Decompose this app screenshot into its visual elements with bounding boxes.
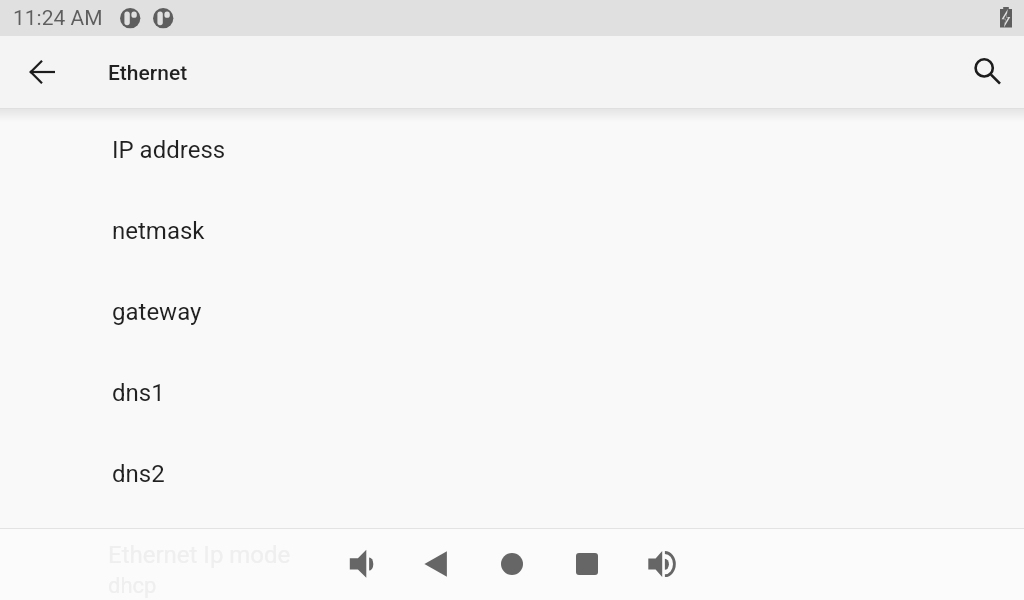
staticText: Ethernet Ip mode <box>108 541 291 569</box>
staticText: dns1 <box>112 379 165 407</box>
button[interactable]: Volume up <box>638 540 686 588</box>
button[interactable]: Ethernet Ip mode <box>0 514 1024 595</box>
staticText: gateway <box>112 298 202 326</box>
button[interactable]: gateway <box>0 271 1024 352</box>
staticText: netmask <box>112 217 205 245</box>
staticText: dns2 <box>112 460 165 488</box>
staticText: Ethernet <box>108 61 188 86</box>
button[interactable]: Volume down <box>336 540 384 588</box>
staticText: dhcp <box>108 573 157 599</box>
button[interactable]: dns2 <box>0 433 1024 514</box>
button[interactable]: netmask <box>0 190 1024 271</box>
staticText: 11:24 AM <box>13 6 103 31</box>
button[interactable]: IP address <box>0 109 1024 190</box>
staticText: IP address <box>112 136 226 164</box>
button[interactable]: Home <box>488 540 536 588</box>
button[interactable]: Back <box>412 540 460 588</box>
button[interactable]: Search <box>960 48 1008 96</box>
button[interactable]: Recent apps <box>563 540 611 588</box>
button[interactable]: dns1 <box>0 352 1024 433</box>
button[interactable]: Navigate up <box>18 48 66 96</box>
